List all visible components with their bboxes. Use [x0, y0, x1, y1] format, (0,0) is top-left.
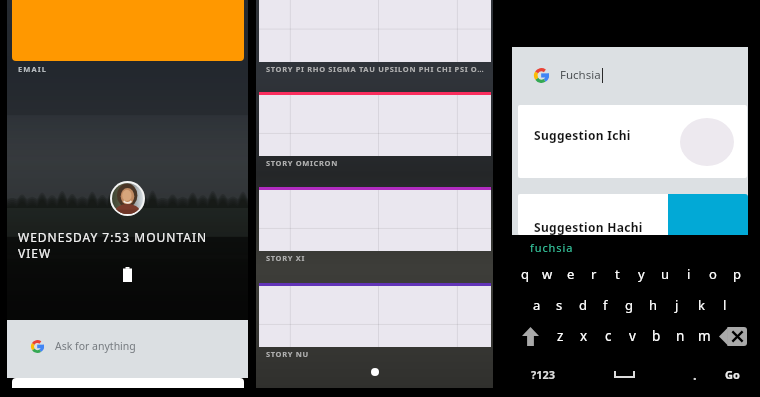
- staticText: STORY PI RHO SIGMA TAU UPSILON PHI CHI P…: [266, 64, 497, 74]
- staticText: ?123: [531, 367, 556, 382]
- staticText: STORY OMICRON: [266, 158, 497, 168]
- staticText: z: [557, 327, 564, 345]
- staticText: d: [579, 296, 587, 314]
- staticText: w: [542, 265, 553, 283]
- staticText: c: [605, 327, 612, 345]
- staticText: Suggestion Ichi: [534, 127, 631, 143]
- button[interactable]: [668, 194, 748, 235]
- button[interactable]: b: [644, 320, 668, 352]
- button[interactable]: g: [617, 289, 641, 320]
- button[interactable]: r: [582, 259, 605, 289]
- staticText: l: [723, 296, 727, 314]
- button[interactable]: Shift: [512, 320, 549, 352]
- staticText: r: [591, 265, 597, 283]
- button[interactable]: .: [675, 352, 715, 397]
- staticText: x: [580, 327, 588, 345]
- staticText: Suggestion Hachi: [534, 219, 643, 235]
- button[interactable]: e: [559, 259, 582, 289]
- staticText: e: [567, 265, 575, 283]
- button[interactable]: Ask for anything: [7, 320, 248, 378]
- button[interactable]: h: [641, 289, 665, 320]
- staticText: o: [709, 265, 717, 283]
- button[interactable]: f: [594, 289, 617, 320]
- staticText: n: [676, 327, 685, 345]
- staticText: WEDNESDAY 7:53 MOUNTAIN VIEW: [18, 229, 233, 261]
- button[interactable]: Profile photo: [112, 183, 143, 214]
- button[interactable]: p: [725, 259, 749, 289]
- button[interactable]: [259, 283, 491, 347]
- staticText: s: [556, 296, 563, 314]
- staticText: STORY XI: [266, 253, 497, 263]
- button[interactable]: m: [692, 320, 716, 352]
- staticText: v: [629, 327, 636, 345]
- staticText: Ask for anything: [55, 339, 136, 353]
- button[interactable]: z: [549, 320, 572, 352]
- staticText: u: [661, 265, 670, 283]
- staticText: p: [733, 265, 741, 283]
- button[interactable]: s: [548, 289, 571, 320]
- staticText: g: [625, 296, 633, 314]
- staticText: q: [521, 265, 529, 283]
- button[interactable]: d: [571, 289, 594, 320]
- staticText: a: [533, 296, 541, 314]
- button[interactable]: q: [513, 259, 536, 289]
- button[interactable]: j: [665, 289, 689, 320]
- button[interactable]: a: [525, 289, 548, 320]
- button[interactable]: x: [572, 320, 596, 352]
- staticText: STORY NU: [266, 349, 497, 359]
- button[interactable]: t: [605, 259, 629, 289]
- button[interactable]: u: [653, 259, 677, 289]
- staticText: h: [649, 296, 658, 314]
- staticText: k: [698, 296, 705, 314]
- button[interactable]: k: [689, 289, 713, 320]
- staticText: Fuchsia: [560, 67, 601, 83]
- staticText: j: [675, 296, 679, 314]
- button[interactable]: w: [536, 259, 559, 289]
- button[interactable]: Fuchsia: [512, 47, 748, 103]
- button[interactable]: v: [620, 320, 644, 352]
- button[interactable]: Go: [715, 352, 750, 397]
- button[interactable]: n: [668, 320, 692, 352]
- button[interactable]: Backspace: [716, 320, 750, 352]
- button[interactable]: o: [701, 259, 725, 289]
- staticText: fuchsia: [530, 240, 574, 255]
- button[interactable]: [259, 187, 491, 251]
- button[interactable]: y: [629, 259, 653, 289]
- button[interactable]: Suggestion Hachi: [518, 194, 668, 235]
- button[interactable]: l: [713, 289, 737, 320]
- button[interactable]: i: [677, 259, 701, 289]
- staticText: b: [652, 327, 661, 345]
- button[interactable]: [259, 92, 491, 156]
- button[interactable]: Space: [574, 352, 675, 397]
- staticText: f: [603, 296, 608, 314]
- button[interactable]: [12, 0, 244, 61]
- staticText: m: [698, 327, 711, 345]
- staticText: i: [687, 265, 691, 283]
- staticText: y: [638, 265, 645, 283]
- button[interactable]: Suggestion Ichi: [518, 105, 747, 178]
- button[interactable]: c: [596, 320, 620, 352]
- button[interactable]: ?123: [512, 352, 574, 397]
- staticText: t: [615, 265, 620, 283]
- staticText: Go: [725, 367, 740, 382]
- staticText: EMAIL: [18, 64, 48, 74]
- staticText: .: [693, 366, 697, 384]
